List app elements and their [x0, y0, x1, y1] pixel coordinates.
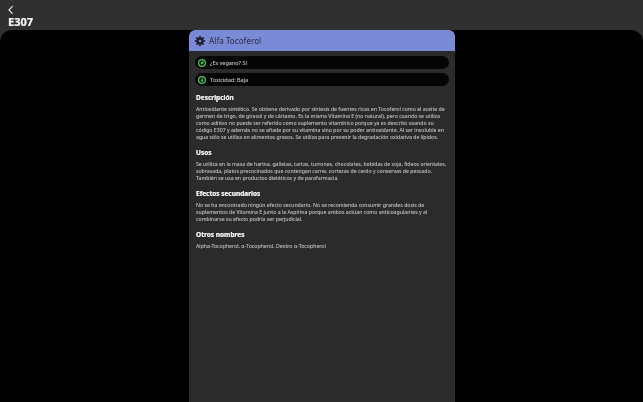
button[interactable]: ¿Es vegano? Sí	[195, 56, 449, 69]
staticText: Se utiliza en la masa de harina, galleta…	[196, 160, 448, 181]
staticText: ¿Es vegano? Sí	[210, 59, 247, 66]
staticText: Antioxidante sintético. Se obtiene deriv…	[196, 105, 448, 140]
staticText: Alpha-Tocopherol, α-Tocopherol, Dextro α…	[196, 242, 326, 249]
staticText: E307	[8, 14, 34, 29]
staticText: No se ha encontrado ningún efecto secund…	[196, 201, 448, 222]
staticText: Toxicidad: Baja	[210, 76, 249, 83]
staticText: Alfa Tocoferol	[209, 35, 262, 46]
staticText: Usos	[196, 148, 212, 157]
staticText: Descripción	[196, 93, 234, 102]
staticText: Otros nombres	[196, 230, 245, 239]
staticText: Efectos secundarios	[196, 189, 261, 198]
button[interactable]: Back	[2, 1, 20, 19]
button[interactable]: Alfa Tocoferol	[189, 30, 455, 51]
button[interactable]: Toxicidad: Baja	[195, 73, 449, 86]
